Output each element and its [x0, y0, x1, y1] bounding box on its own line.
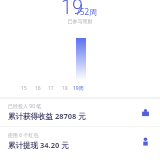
- staticText: /52周: [77, 6, 98, 17]
- staticText: 已参与理财: [0, 18, 160, 24]
- button[interactable]: 已经投入 90 笔: [0, 99, 160, 125]
- button[interactable]: 使用 6 个红包: [0, 128, 160, 154]
- staticText: 15: [21, 85, 27, 92]
- staticText: 已经投入 90 笔: [8, 103, 42, 110]
- staticText: 累计获得收益 28708 元: [8, 111, 86, 121]
- staticText: 16: [35, 85, 41, 92]
- staticText: 18: [62, 85, 68, 92]
- other: Earnings: [141, 108, 150, 117]
- other: Withdraw: [141, 137, 150, 146]
- staticText: 19周: [73, 85, 84, 92]
- staticText: 使用 6 个红包: [8, 132, 39, 139]
- staticText: 累计提现 34.20 元: [8, 140, 69, 150]
- staticText: 19: [61, 0, 84, 18]
- staticText: 17: [48, 85, 54, 92]
